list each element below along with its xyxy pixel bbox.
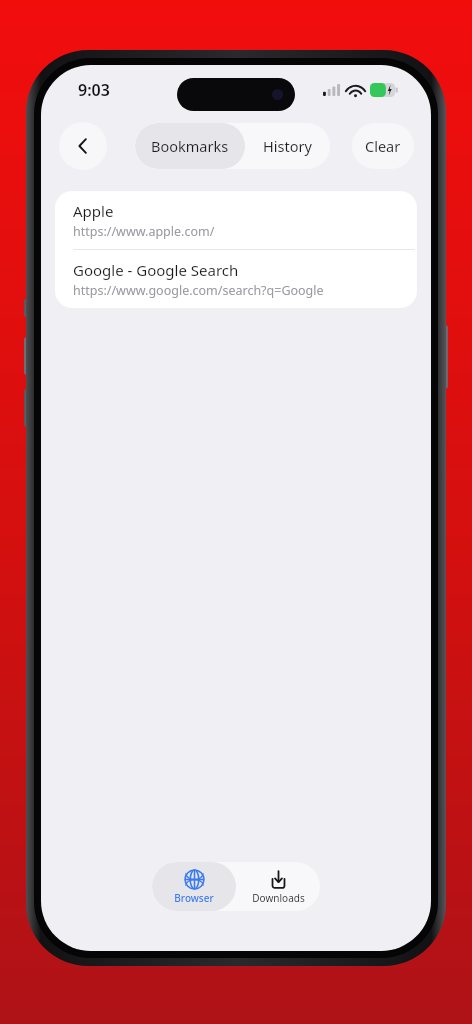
staticText: Downloads bbox=[252, 891, 305, 905]
staticText: https://www.google.com/search?q=Google bbox=[73, 282, 324, 299]
staticText: Bookmarks bbox=[151, 136, 229, 156]
button[interactable]: Back bbox=[59, 122, 107, 170]
staticText: History bbox=[263, 136, 312, 156]
button[interactable]: Browser bbox=[152, 862, 236, 911]
button[interactable]: Bookmarks bbox=[135, 123, 245, 169]
button[interactable]: Google - Google Search bbox=[55, 250, 417, 308]
staticText: 9:03 bbox=[78, 79, 110, 101]
button[interactable]: Downloads bbox=[236, 862, 320, 911]
button[interactable]: Apple bbox=[55, 191, 417, 249]
staticText: Google - Google Search bbox=[73, 260, 239, 280]
staticText: https://www.apple.com/ bbox=[73, 223, 215, 240]
button[interactable]: Clear bbox=[352, 123, 414, 169]
staticText: Clear bbox=[365, 136, 401, 156]
staticText: Browser bbox=[174, 891, 214, 905]
staticText: Apple bbox=[73, 201, 114, 221]
button[interactable]: History bbox=[245, 123, 330, 169]
